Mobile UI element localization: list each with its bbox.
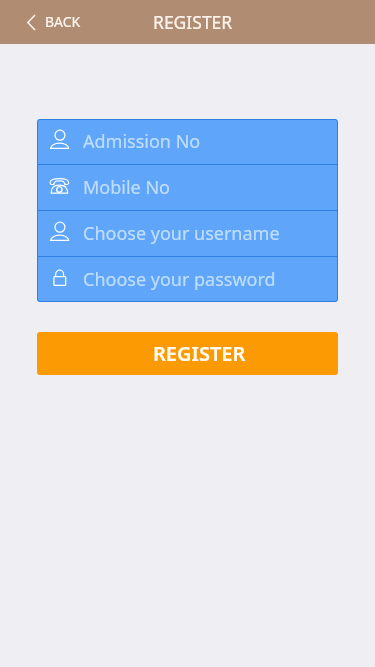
staticText: Admission No: [83, 129, 201, 154]
button[interactable]: REGISTER: [37, 332, 338, 375]
button[interactable]: Mobile No: [37, 165, 338, 210]
button[interactable]: Choose your password: [37, 257, 338, 302]
staticText: BACK: [45, 12, 81, 31]
staticText: REGISTER: [153, 10, 233, 34]
staticText: Choose your username: [83, 221, 280, 246]
button[interactable]: Back: [0, 0, 95, 44]
staticText: REGISTER: [153, 340, 246, 367]
button[interactable]: Choose your username: [37, 211, 338, 256]
button[interactable]: Admission No: [37, 119, 338, 164]
staticText: Choose your password: [83, 267, 276, 292]
staticText: Mobile No: [83, 175, 170, 200]
